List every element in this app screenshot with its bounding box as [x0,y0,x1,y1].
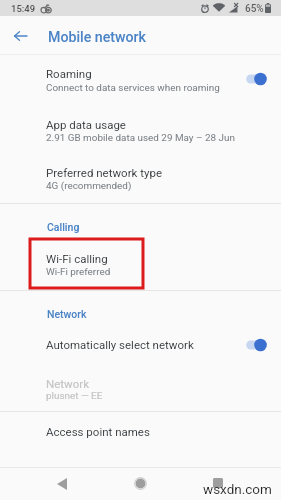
staticText: Network [47,308,87,320]
staticText: Preferred network type [46,166,162,179]
staticText: 4G (recommended) [46,180,132,192]
button[interactable]: Toggle [240,334,274,356]
button[interactable]: Toggle [240,68,274,90]
staticText: Wi-Fi preferred [46,266,111,278]
staticText: 15:49 [11,3,36,14]
staticText: Mobile network [48,29,147,46]
staticText: 65% [245,3,264,15]
staticText: Automatically select network [46,338,194,351]
staticText: wsxdn.com [203,481,272,497]
button[interactable]: Back [42,468,82,499]
button[interactable] [0,156,281,200]
staticText: Wi-Fi calling [46,252,108,265]
button[interactable]: Back [6,21,35,50]
button[interactable] [0,414,281,450]
button[interactable]: Mobile network [48,23,147,51]
button[interactable]: Home [120,468,160,499]
staticText: Roaming [46,67,92,80]
staticText: Calling [47,221,80,233]
button[interactable] [0,108,281,152]
staticText: Network [46,377,89,390]
button[interactable] [0,241,281,287]
staticText: 2.91 GB mobile data used 29 May – 28 Jun [46,132,235,144]
staticText: plusnet — EE [46,390,103,402]
staticText: App data usage [46,118,126,131]
button[interactable]: Recents [198,468,238,499]
button[interactable] [0,368,281,408]
button[interactable] [0,58,281,104]
button[interactable] [0,328,281,364]
staticText: Access point names [46,425,150,438]
staticText: Connect to data services when roaming [46,82,220,94]
